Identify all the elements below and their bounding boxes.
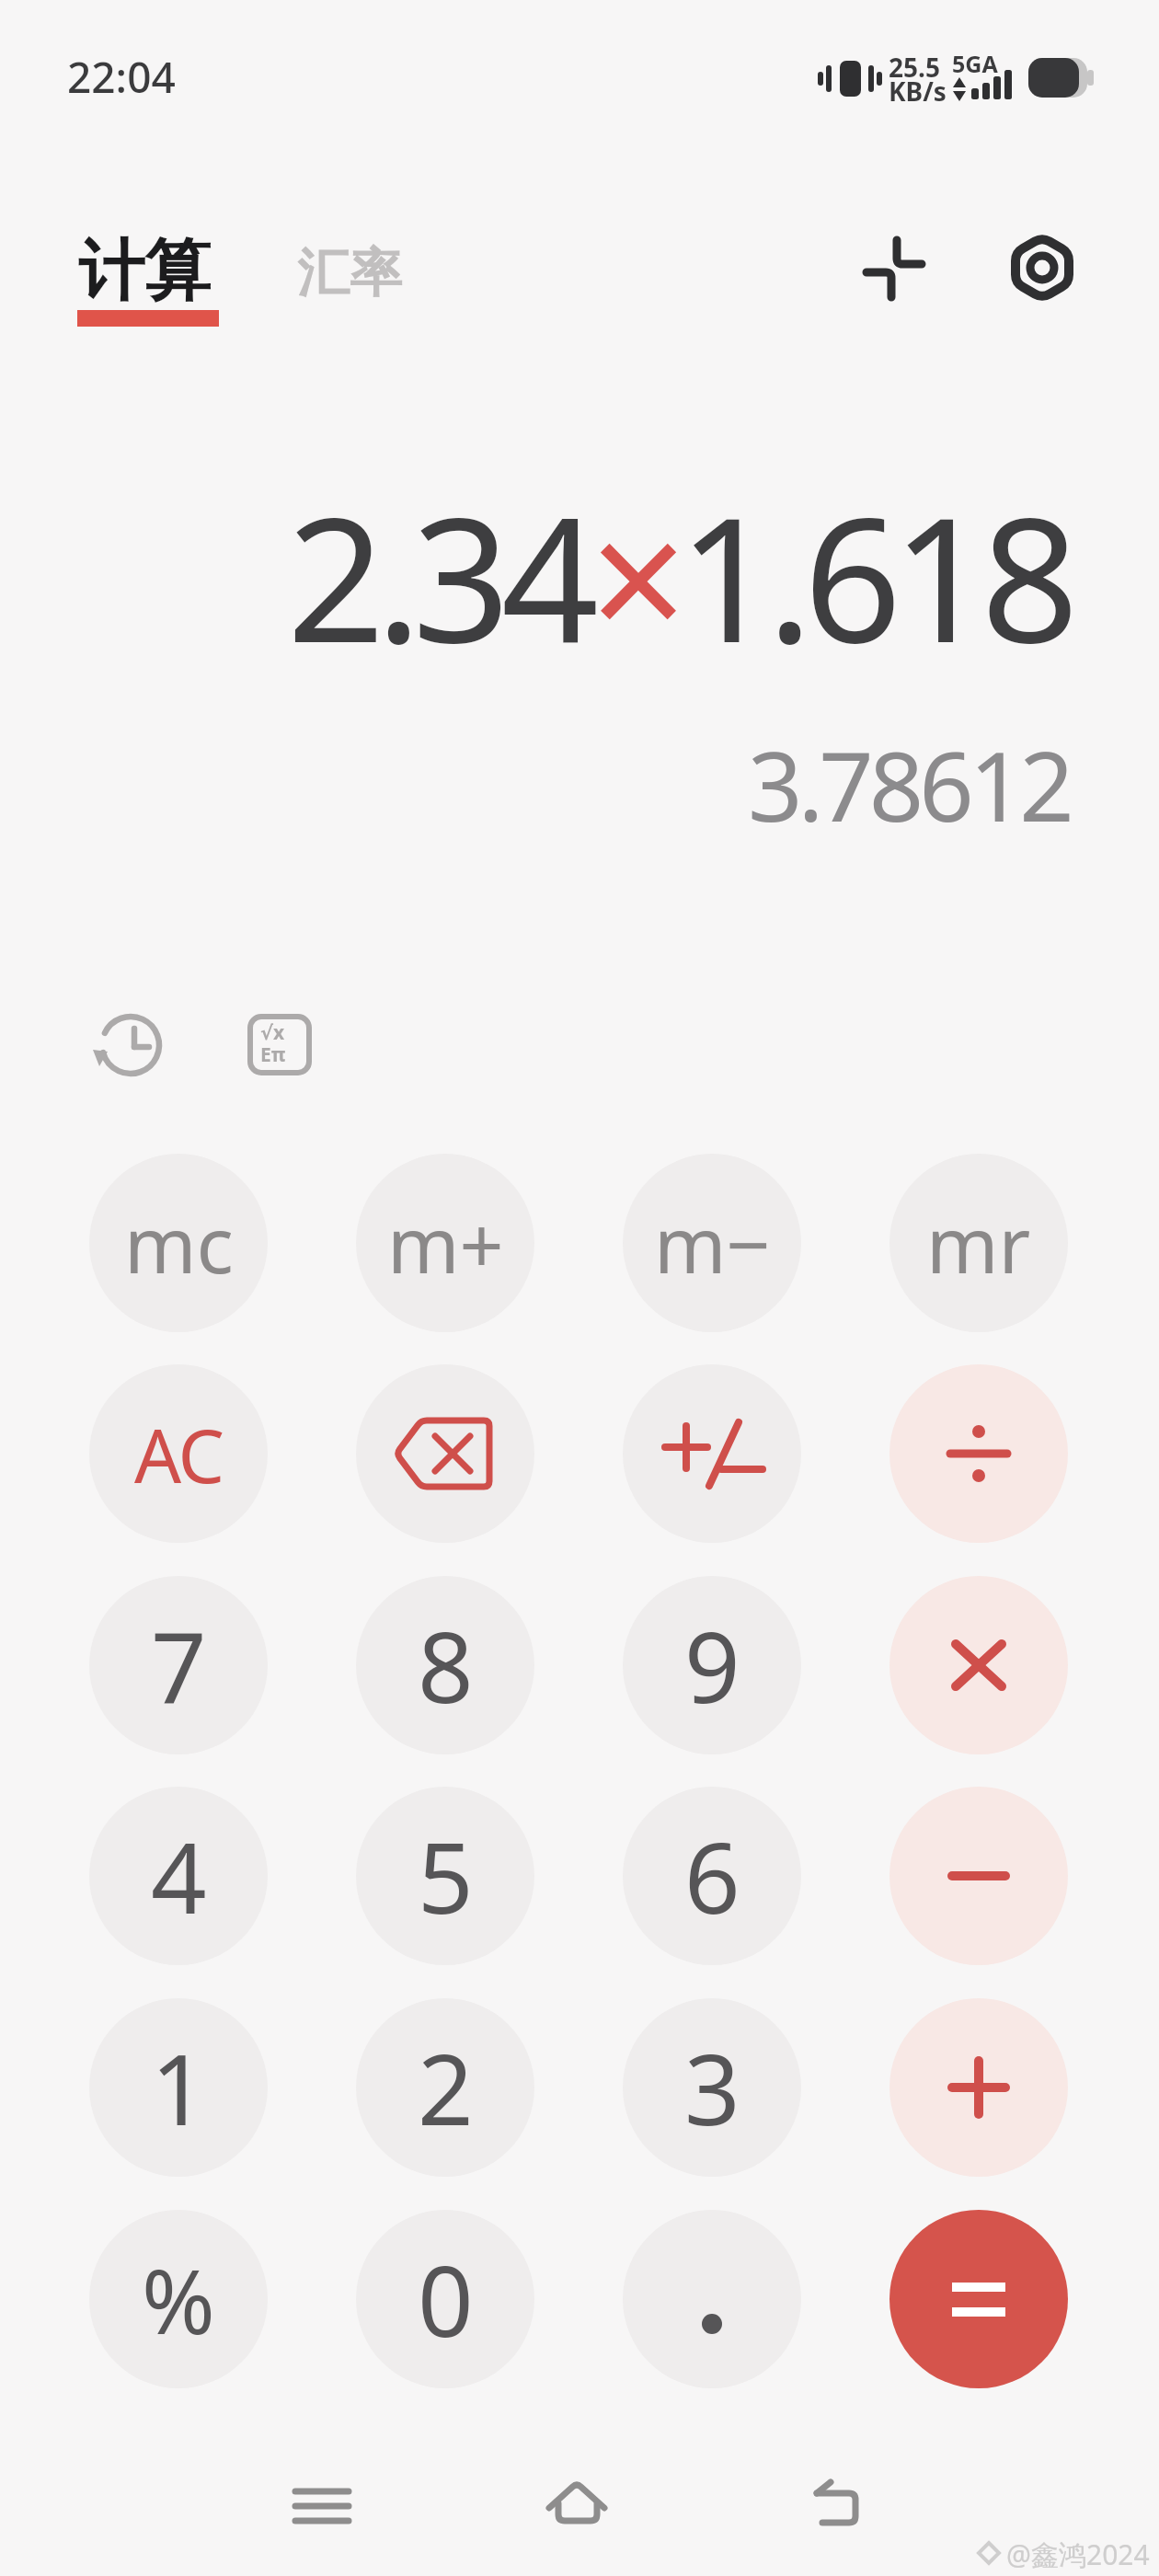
staticText: 6	[684, 1810, 740, 1942]
staticText: m+	[387, 1190, 504, 1295]
button[interactable]	[623, 2210, 801, 2388]
button[interactable]: 0	[356, 2210, 534, 2388]
button[interactable]	[889, 1576, 1068, 1754]
staticText: 1	[151, 2021, 207, 2154]
staticText: Eπ	[260, 1041, 286, 1068]
staticText: 2	[418, 2021, 474, 2154]
staticText: 8	[418, 1599, 474, 1731]
button[interactable]	[535, 2464, 618, 2547]
button[interactable]	[889, 1787, 1068, 1965]
staticText: KB/s	[889, 74, 947, 109]
button[interactable]	[96, 1010, 173, 1087]
staticText: √x	[260, 1019, 285, 1046]
button[interactable]: 8	[356, 1576, 534, 1754]
button[interactable]: 4	[89, 1787, 268, 1965]
button[interactable]	[852, 225, 936, 310]
button[interactable]	[889, 2210, 1068, 2388]
button[interactable]	[356, 1364, 534, 1543]
staticText: @鑫鸿2024	[1006, 2536, 1150, 2573]
staticText: 5	[418, 1810, 474, 1942]
staticText: 3	[684, 2021, 740, 2154]
button[interactable]	[1007, 229, 1081, 303]
button[interactable]: 5	[356, 1787, 534, 1965]
staticText: 0	[418, 2233, 474, 2365]
button[interactable]: AC	[89, 1364, 268, 1543]
button[interactable]: m−	[623, 1154, 801, 1332]
staticText: mr	[926, 1190, 1031, 1295]
staticText: mc	[124, 1190, 234, 1295]
staticText: 4	[151, 1810, 207, 1942]
staticText: 3.78612	[748, 719, 1070, 850]
staticText: 计算	[78, 230, 211, 314]
button[interactable]: 计算	[78, 230, 211, 314]
button[interactable]: 3	[623, 1998, 801, 2177]
staticText: 2.34×1.618	[287, 459, 1070, 692]
button[interactable]	[623, 1364, 801, 1543]
staticText: m−	[654, 1190, 771, 1295]
staticText: 25.5	[889, 50, 940, 85]
button[interactable]: 6	[623, 1787, 801, 1965]
button[interactable]: 1	[89, 1998, 268, 2177]
button[interactable]: mr	[889, 1154, 1068, 1332]
staticText: 9	[684, 1599, 740, 1731]
button[interactable]: m+	[356, 1154, 534, 1332]
staticText: %	[142, 2239, 215, 2360]
button[interactable]: 7	[89, 1576, 268, 1754]
staticText: 7	[151, 1599, 207, 1731]
staticText: AC	[134, 1404, 224, 1504]
button[interactable]: √x	[245, 1011, 315, 1081]
staticText: 5GA	[952, 48, 998, 79]
button[interactable]	[281, 2464, 363, 2547]
button[interactable]: 9	[623, 1576, 801, 1754]
button[interactable]: 汇率	[297, 240, 402, 306]
staticText: 22:04	[67, 48, 176, 106]
button[interactable]	[889, 1364, 1068, 1543]
button[interactable]	[889, 1998, 1068, 2177]
staticText: 汇率	[297, 240, 402, 306]
button[interactable]	[797, 2464, 879, 2547]
button[interactable]: mc	[89, 1154, 268, 1332]
button[interactable]: %	[89, 2210, 268, 2388]
button[interactable]: 2	[356, 1998, 534, 2177]
